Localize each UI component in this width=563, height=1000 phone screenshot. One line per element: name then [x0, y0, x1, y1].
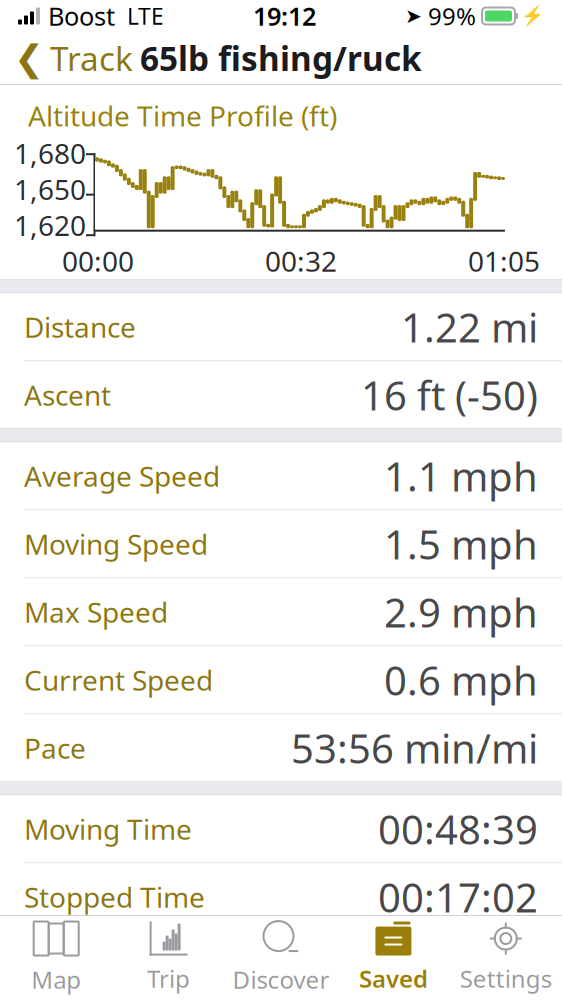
staticText: LTE	[127, 1, 164, 31]
button[interactable]: Saved	[337, 916, 450, 1000]
button[interactable]: Discover	[225, 916, 337, 1000]
staticText: Track	[50, 36, 133, 80]
staticText: 53:56 min/mi	[291, 721, 538, 774]
button[interactable]: Average Speed	[0, 442, 562, 510]
button[interactable]: Pace	[0, 714, 562, 781]
staticText: Ascent	[24, 376, 111, 413]
staticText: Boost	[48, 0, 115, 33]
staticText: 19:12	[253, 0, 316, 33]
staticText: 00:32	[265, 242, 337, 279]
staticText: 00:48:39	[378, 802, 538, 855]
staticText: Pace	[24, 729, 86, 766]
staticText: Settings	[460, 963, 552, 994]
staticText: 1.5 mph	[384, 517, 538, 570]
staticText: ⚡	[521, 5, 544, 27]
staticText: ❮	[14, 38, 44, 78]
staticText: 1,620	[14, 207, 86, 244]
staticText: Average Speed	[24, 457, 220, 494]
staticText: 2.9 mph	[384, 585, 538, 638]
button[interactable]: Moving Speed	[0, 510, 562, 578]
staticText: 16 ft (-50)	[361, 368, 538, 421]
button[interactable]: Settings	[450, 916, 562, 1000]
staticText: Max Speed	[24, 593, 168, 630]
staticText: 65lb fishing/ruck	[140, 36, 422, 80]
staticText: Trip	[147, 963, 190, 994]
staticText: Altitude Time Profile (ft)	[28, 97, 337, 134]
button[interactable]: Current Speed	[0, 646, 562, 714]
button[interactable]: Stopped Time	[0, 863, 562, 930]
staticText: 00:00	[62, 242, 134, 279]
staticText: 1,650	[14, 171, 86, 208]
staticText: Stopped Time	[24, 878, 205, 915]
staticText: Moving Time	[24, 810, 192, 847]
button[interactable]: Moving Time	[0, 795, 562, 863]
button[interactable]: Trip	[112, 916, 225, 1000]
staticText: 99%	[428, 0, 476, 32]
button[interactable]: Max Speed	[0, 578, 562, 646]
button[interactable]: ❮	[0, 33, 147, 83]
staticText: Distance	[24, 308, 136, 345]
staticText: 01:05	[468, 242, 540, 279]
staticText: Current Speed	[24, 661, 213, 698]
button[interactable]: Distance	[0, 293, 562, 361]
staticText: 0.6 mph	[384, 653, 538, 706]
staticText: Map	[31, 964, 81, 995]
button[interactable]: Ascent	[0, 361, 562, 428]
staticText: ➤	[405, 5, 422, 27]
staticText: 1,680	[14, 135, 86, 172]
button[interactable]: Map	[0, 916, 112, 1000]
staticText: Moving Speed	[24, 525, 208, 562]
staticText: 1.1 mph	[384, 449, 538, 502]
staticText: 00:17:02	[378, 870, 538, 923]
staticText: 1.22 mi	[401, 300, 538, 353]
staticText: Saved	[359, 963, 428, 994]
staticText: Discover	[232, 964, 329, 995]
